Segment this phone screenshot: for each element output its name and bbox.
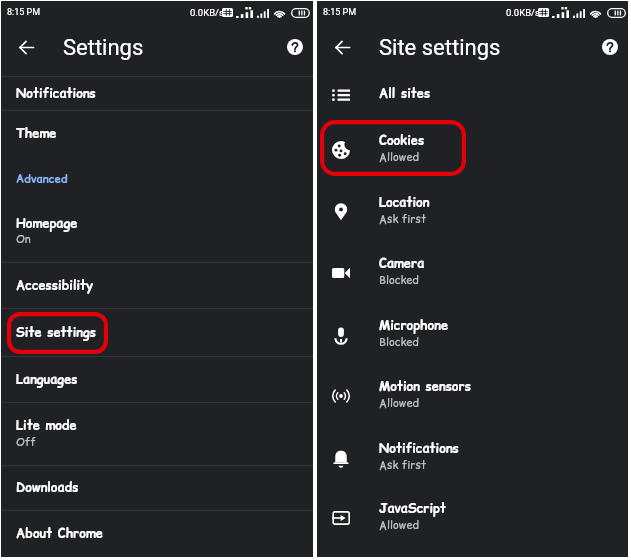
staticText: Allowed — [379, 517, 419, 532]
button[interactable]: Camera — [317, 243, 628, 303]
staticText: Blocked — [379, 334, 419, 349]
button[interactable]: Help and feedback — [598, 35, 622, 59]
staticText: Allowed — [379, 149, 419, 164]
button[interactable]: Location — [317, 182, 628, 242]
button[interactable]: Lite mode — [1, 403, 313, 465]
staticText: Off — [16, 434, 36, 449]
staticText: Notifications — [379, 440, 459, 458]
staticText: Lite mode — [16, 417, 77, 435]
button[interactable]: Cookies — [317, 120, 628, 180]
staticText: Notifications — [16, 85, 96, 103]
staticText: Languages — [16, 371, 78, 389]
staticText: On — [16, 231, 31, 246]
button[interactable]: Advanced — [1, 156, 313, 201]
button[interactable]: All sites — [317, 74, 628, 114]
button[interactable]: Accessibility — [1, 263, 313, 308]
staticText: Location — [379, 194, 430, 212]
staticText: Settings — [63, 35, 144, 61]
staticText: Ask first — [379, 211, 427, 226]
button[interactable]: Navigate up — [13, 34, 39, 60]
staticText: Theme — [16, 125, 57, 143]
staticText: Ask first — [379, 457, 427, 472]
staticText: Accessibility — [16, 277, 94, 295]
button[interactable]: JavaScript — [317, 488, 628, 548]
button[interactable]: Downloads — [1, 466, 313, 510]
button[interactable]: Help and feedback — [283, 35, 307, 59]
staticText: Homepage — [16, 215, 78, 233]
button[interactable]: About Chrome — [1, 511, 313, 557]
staticText: 8:15 PM — [7, 7, 41, 18]
button[interactable]: Theme — [1, 111, 313, 156]
staticText: Cookies — [379, 132, 425, 150]
staticText: Site settings — [16, 324, 96, 342]
staticText: Blocked — [379, 272, 419, 287]
staticText: 0.0KB/s — [506, 7, 540, 18]
staticText: 8:15 PM — [323, 7, 357, 18]
staticText: JavaScript — [379, 500, 446, 518]
staticText: About Chrome — [16, 525, 104, 543]
button[interactable]: Navigate up — [329, 34, 355, 60]
staticText: Downloads — [16, 479, 79, 497]
button[interactable]: Notifications — [317, 428, 628, 488]
staticText: All sites — [379, 85, 431, 103]
button[interactable]: Languages — [1, 357, 313, 402]
staticText: Site settings — [379, 35, 501, 61]
staticText: Microphone — [379, 317, 449, 335]
button[interactable]: Notifications — [1, 77, 313, 110]
staticText: Advanced — [16, 171, 68, 187]
staticText: Motion sensors — [379, 378, 471, 396]
staticText: Allowed — [379, 395, 419, 410]
button[interactable]: Microphone — [317, 305, 628, 365]
staticText: Camera — [379, 255, 425, 273]
button[interactable]: Site settings — [1, 309, 313, 356]
staticText: 0.0KB/s — [190, 7, 224, 18]
button[interactable]: Homepage — [1, 201, 313, 262]
button[interactable]: Motion sensors — [317, 366, 628, 426]
